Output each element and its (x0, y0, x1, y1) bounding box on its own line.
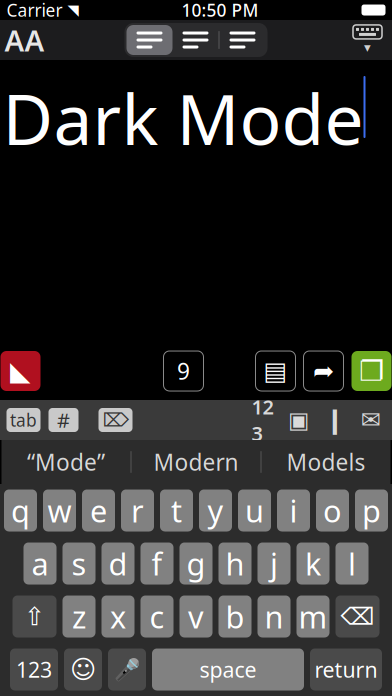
staticText: z (72, 596, 86, 637)
button[interactable]: Numbers (10, 648, 58, 690)
staticText: Dark Mode (2, 72, 363, 164)
staticText: ◣ (10, 356, 31, 386)
staticText: o (323, 490, 342, 531)
button[interactable]: l (335, 542, 368, 584)
staticText: b (225, 596, 244, 637)
button[interactable]: j (257, 542, 290, 584)
staticText: s (71, 543, 86, 584)
staticText: ⌦ (102, 409, 128, 431)
button[interactable]: ❐ (351, 351, 391, 391)
staticText: ⇧ (24, 602, 45, 631)
button[interactable]: g (179, 542, 212, 584)
button[interactable]: y (199, 489, 232, 531)
button[interactable]: Mail (355, 407, 385, 433)
button[interactable]: “Mode” (1, 440, 130, 484)
button[interactable]: ◣ (0, 351, 40, 391)
button[interactable]: x (101, 595, 134, 637)
button[interactable]: z (62, 595, 95, 637)
button[interactable]: Align left (126, 25, 172, 55)
staticText: j (270, 543, 278, 584)
staticText: 123 (251, 393, 273, 446)
staticText: g (186, 543, 205, 584)
button[interactable]: u (238, 489, 271, 531)
staticText: r (131, 490, 144, 531)
button[interactable]: 9 (163, 351, 203, 391)
staticText: AA (4, 20, 44, 59)
button[interactable]: w (43, 489, 76, 531)
staticText: 9 (177, 356, 190, 386)
button[interactable]: d (101, 542, 134, 584)
staticText: ❙ (324, 406, 345, 434)
button[interactable]: ➦ (303, 351, 343, 391)
button[interactable]: t (160, 489, 193, 531)
button[interactable]: Date (283, 407, 313, 433)
staticText: Carrier (6, 0, 62, 21)
staticText: Models (286, 447, 365, 477)
button[interactable]: Shift (12, 595, 56, 637)
button[interactable]: n (257, 595, 290, 637)
staticText: ◥ (67, 2, 78, 18)
button[interactable]: Dictate (108, 648, 146, 690)
staticText: x (110, 596, 126, 637)
button[interactable]: f (140, 542, 173, 584)
staticText: ✉ (360, 406, 380, 434)
staticText: ❐ (359, 355, 384, 387)
staticText: q (11, 490, 30, 531)
button[interactable]: ⌦ (98, 408, 132, 432)
button[interactable]: ▤ (255, 351, 295, 391)
button[interactable]: p (355, 489, 388, 531)
button[interactable]: a (23, 542, 56, 584)
staticText: e (90, 490, 107, 531)
staticText: h (225, 543, 244, 584)
button[interactable]: i (277, 489, 310, 531)
staticText: v (188, 596, 204, 637)
button[interactable]: r (121, 489, 154, 531)
button[interactable]: space (152, 648, 304, 690)
staticText: a (31, 543, 48, 584)
button[interactable]: h (218, 542, 251, 584)
staticText: Modern (153, 447, 238, 477)
button[interactable]: s (62, 542, 95, 584)
staticText: tab (10, 408, 37, 431)
staticText: l (348, 543, 356, 584)
button[interactable]: Emoji (64, 648, 102, 690)
staticText: d (108, 543, 127, 584)
button[interactable]: Models (261, 440, 390, 484)
staticText: m (298, 596, 327, 637)
button[interactable]: b (218, 595, 251, 637)
button[interactable]: Numbers (247, 407, 277, 433)
button[interactable]: Text size (0, 21, 48, 59)
staticText: # (57, 407, 70, 433)
button[interactable]: Modern (131, 440, 260, 484)
staticText: t (171, 490, 182, 531)
staticText: y (207, 490, 223, 531)
button[interactable]: Align center (172, 25, 218, 55)
button[interactable]: tab (6, 408, 40, 432)
button[interactable]: o (316, 489, 349, 531)
staticText: ▣ (288, 407, 309, 433)
staticText: 🎤 (113, 657, 140, 682)
button[interactable]: Delete (335, 595, 379, 637)
staticText: ➦ (313, 357, 334, 385)
button[interactable]: Align right (219, 25, 265, 55)
staticText: return (314, 655, 377, 684)
button[interactable]: Hide keyboard (343, 21, 391, 59)
staticText: i (289, 490, 297, 531)
staticText: k (305, 543, 321, 584)
button[interactable]: e (82, 489, 115, 531)
staticText: ⌫ (340, 603, 374, 630)
staticText: space (199, 655, 256, 684)
staticText: ▤ (263, 357, 287, 385)
button[interactable]: v (179, 595, 212, 637)
button[interactable]: k (296, 542, 329, 584)
staticText: “Mode” (27, 447, 105, 477)
staticText: c (149, 596, 164, 637)
button[interactable]: c (140, 595, 173, 637)
staticText: ☺ (70, 655, 96, 684)
button[interactable]: m (296, 595, 329, 637)
button[interactable]: q (4, 489, 37, 531)
button[interactable]: # (48, 408, 78, 432)
staticText: u (245, 490, 264, 531)
button[interactable]: Bookmark (319, 407, 349, 433)
button[interactable]: return (310, 648, 382, 690)
